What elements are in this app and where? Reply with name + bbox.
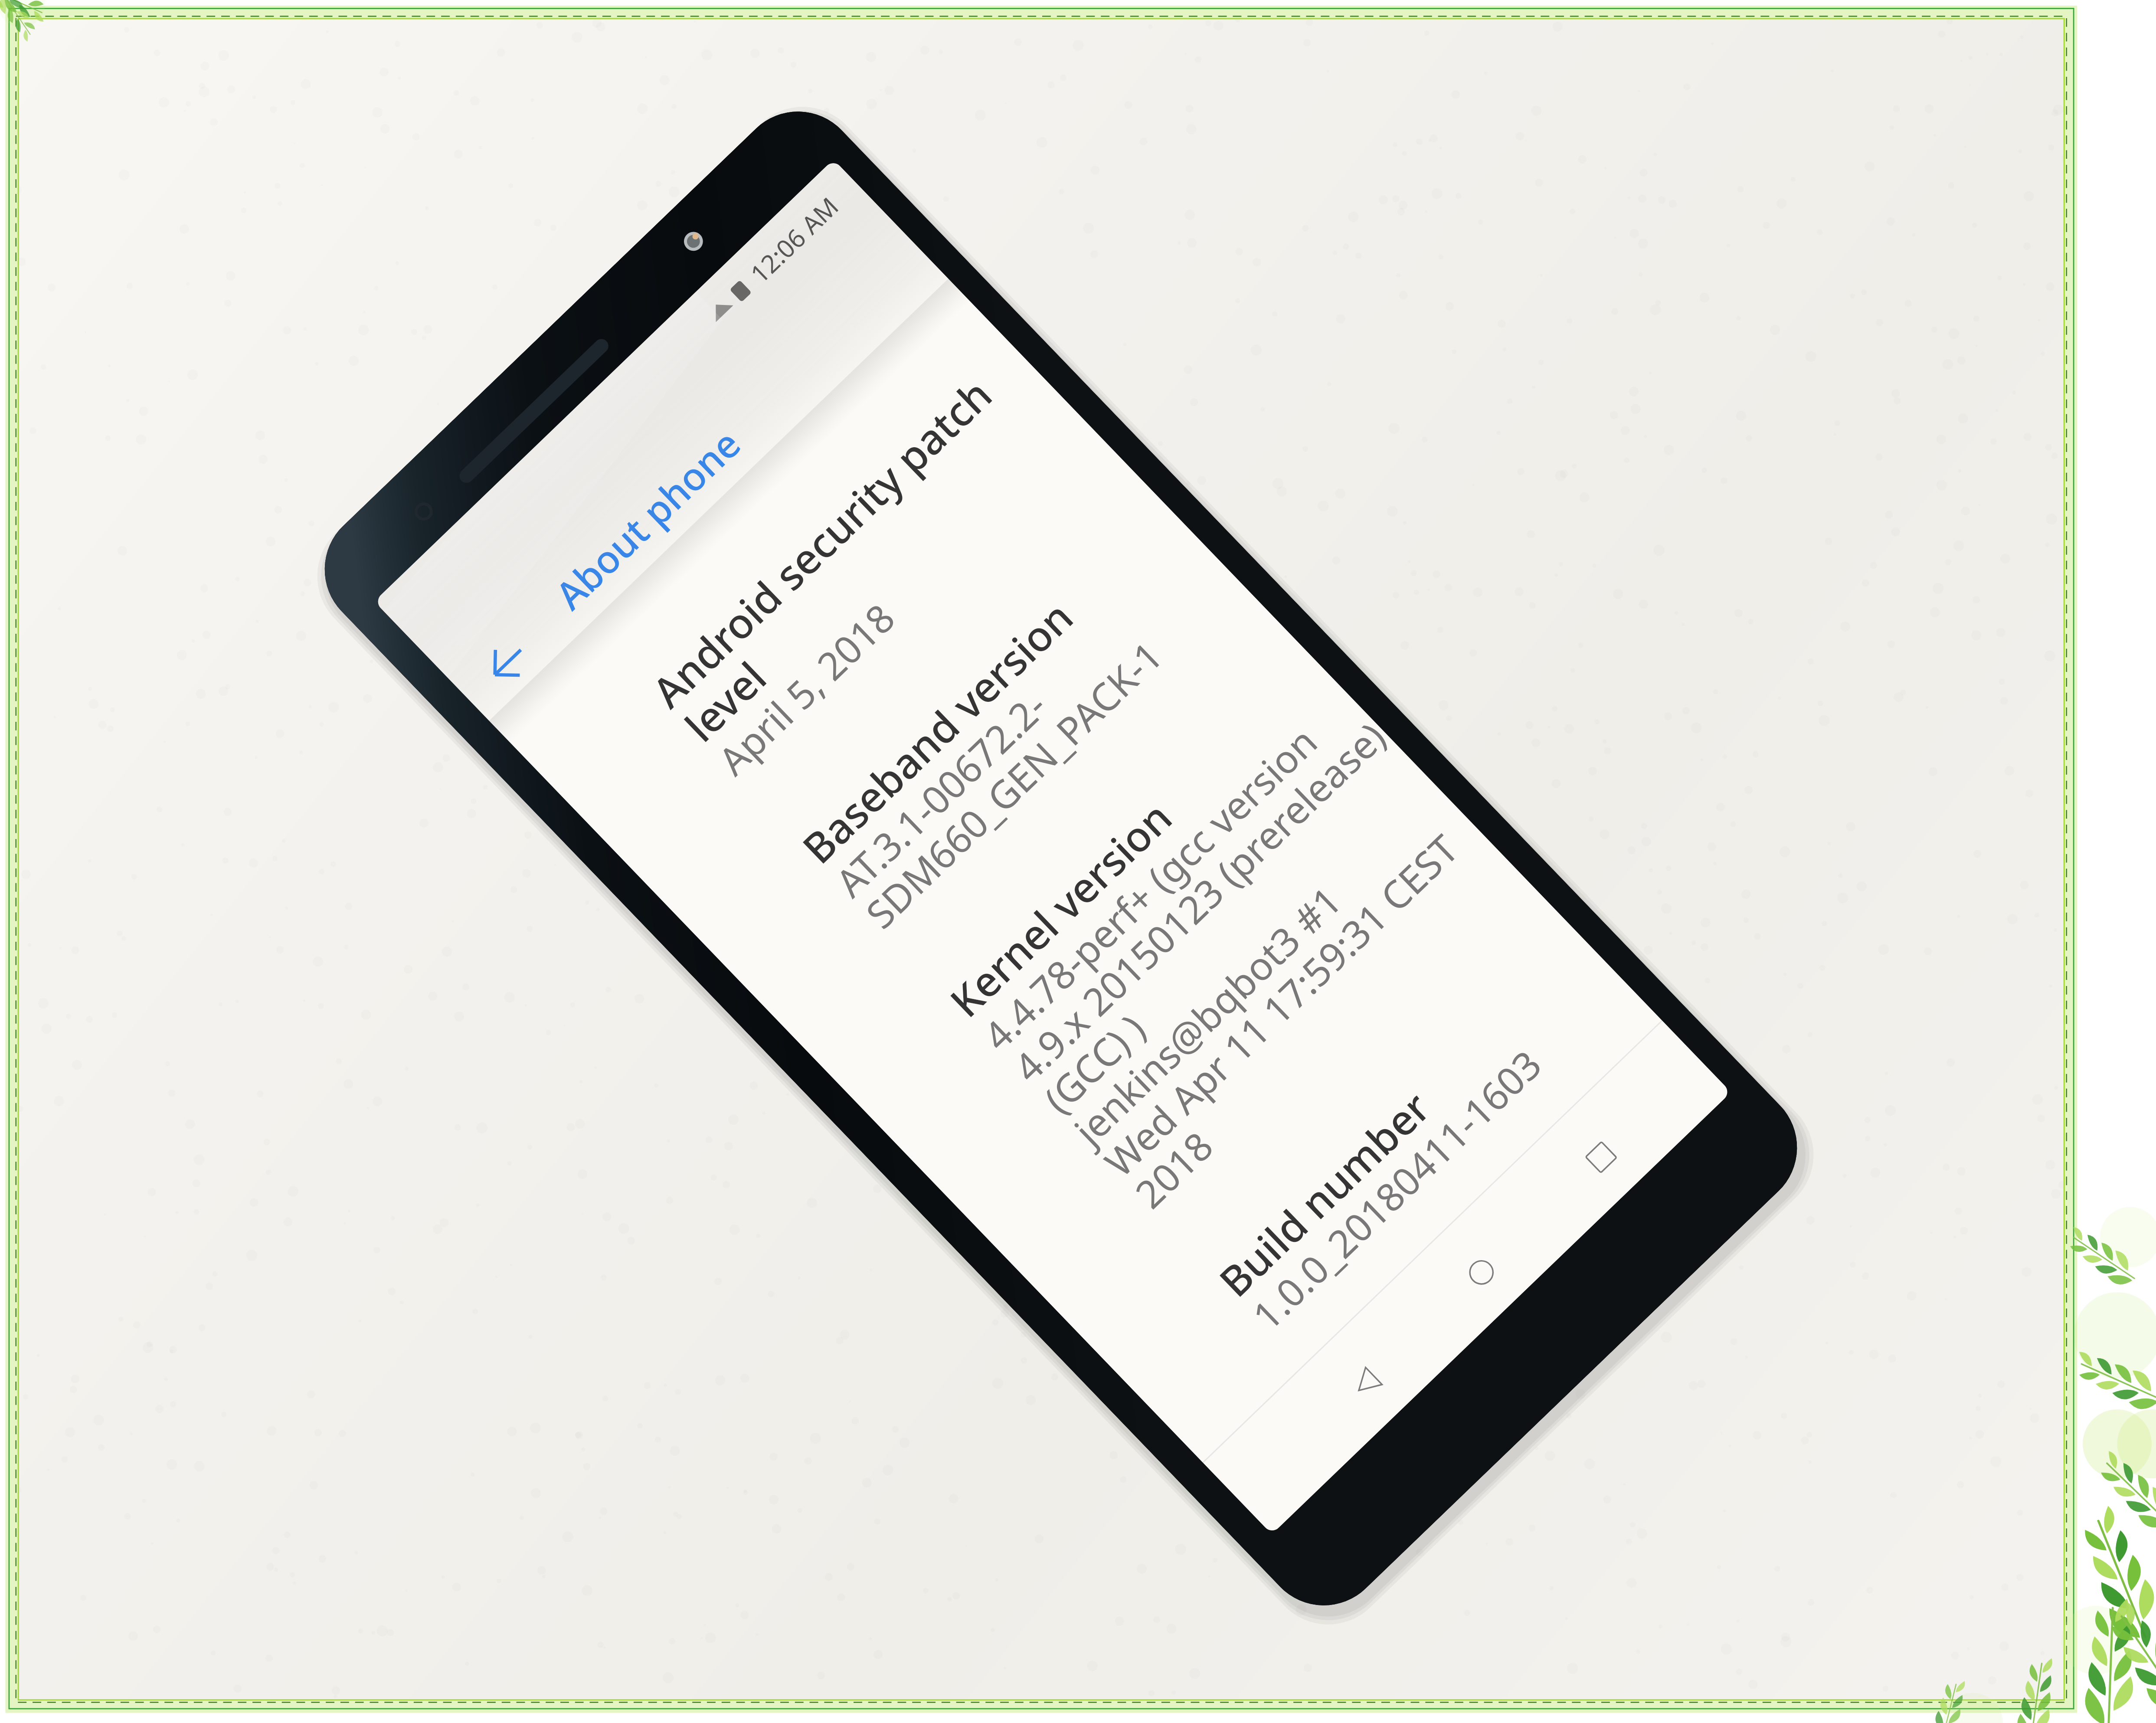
staticText: 1.0.0_20180411-1603	[1241, 1038, 1552, 1341]
button[interactable]: Back	[1297, 1313, 1432, 1449]
button[interactable]: About phone	[544, 418, 751, 620]
staticText: Kernel version	[937, 789, 1183, 1029]
button[interactable]: Kernel version	[937, 641, 1566, 1267]
button[interactable]: Build number	[1206, 921, 1684, 1389]
staticText: Build number	[1206, 1079, 1441, 1308]
staticText: April 5, 2018	[707, 592, 905, 786]
button[interactable]: Recents	[1531, 1087, 1667, 1223]
button[interactable]: Android security patch level	[640, 332, 1150, 834]
staticText: AT.3.1-00672.2- SDM660_GEN_PACK-1	[824, 598, 1173, 939]
staticText: Android security patch level	[640, 366, 1036, 753]
button[interactable]: Home	[1412, 1202, 1547, 1338]
staticText: Baseband version	[790, 588, 1084, 875]
staticText: 12:06 AM	[743, 189, 845, 290]
button[interactable]: Back	[452, 607, 563, 718]
button[interactable]: Baseband version	[790, 488, 1297, 988]
staticText: 4.4.78-perf+ (gcc version 4.9.x 20150123…	[972, 679, 1518, 1219]
staticText: About phone	[544, 418, 751, 620]
